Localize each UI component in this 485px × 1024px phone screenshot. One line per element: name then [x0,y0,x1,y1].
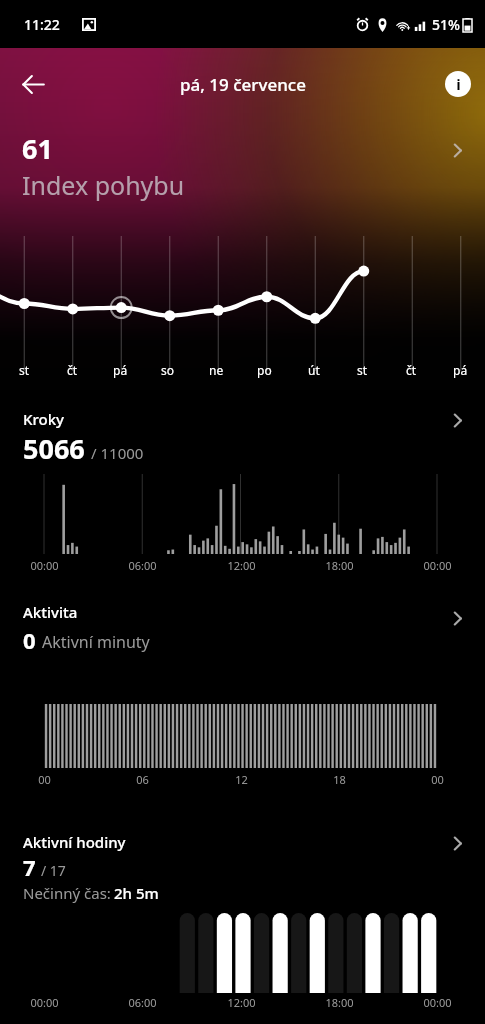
staticText: pá, 19 července [180,73,306,96]
button[interactable]: Kroky [0,396,485,588]
button[interactable]: Aktivní hodiny [0,818,485,1015]
staticText: so [161,362,175,378]
button[interactable]: 61 [0,120,485,230]
staticText: 00:00 [30,995,59,1010]
staticText: čt [67,362,78,378]
staticText: 18:00 [325,995,354,1010]
staticText: 06 [136,772,149,787]
staticText: 00:00 [30,558,59,573]
staticText: čt [406,362,417,378]
staticText: 0 [23,625,36,655]
staticText: Aktivita [23,602,78,622]
staticText: st [357,362,368,378]
staticText: 06:00 [128,995,157,1010]
staticText: 11:22 [24,15,60,34]
staticText: 2h 5m [114,883,159,903]
staticText: / 17 [41,861,66,880]
staticText: út [308,362,320,378]
staticText: 00 [431,772,444,787]
staticText: 7 [23,852,36,882]
staticText: 00:00 [423,558,452,573]
staticText: Aktivní hodiny [23,832,126,852]
staticText: Aktivní minuty [42,631,150,653]
button[interactable]: Info [445,71,471,97]
staticText: pá [453,362,468,378]
staticText: Index pohybu [22,168,185,202]
staticText: Kroky [23,409,64,429]
staticText: 12:00 [227,995,256,1010]
staticText: 18 [333,772,346,787]
staticText: 5066 [23,430,85,467]
staticText: pá [113,362,128,378]
staticText: 06:00 [128,558,157,573]
staticText: po [257,362,272,378]
staticText: / 11000 [91,443,144,463]
staticText: 18:00 [325,558,354,573]
staticText: 61 [22,130,53,167]
staticText: 12:00 [227,558,256,573]
button[interactable]: Aktivita [0,588,485,818]
staticText: ne [209,362,224,378]
staticText: 00 [38,772,51,787]
button[interactable]: Back [10,61,56,107]
staticText: st [19,362,30,378]
staticText: Nečinný čas: [23,883,111,903]
staticText: 51% [432,15,460,34]
staticText: 00:00 [423,995,452,1010]
staticText: i [456,74,461,94]
staticText: 12 [235,772,248,787]
